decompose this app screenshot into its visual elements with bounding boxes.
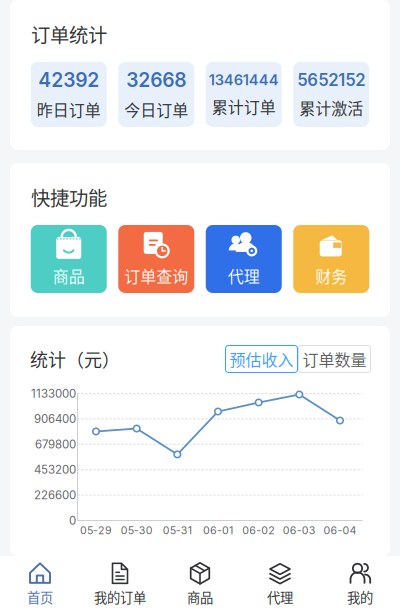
staticText: 代理: [267, 587, 293, 607]
staticText: 453200: [34, 463, 76, 477]
button[interactable]: 订单查询: [118, 225, 194, 293]
staticText: 代理: [228, 264, 260, 287]
staticText: 财务: [315, 264, 347, 287]
staticText: 累计订单: [212, 95, 276, 118]
staticText: 商品: [187, 587, 213, 607]
staticText: 06-02: [242, 524, 275, 537]
button[interactable]: 财务: [293, 225, 369, 293]
button[interactable]: 预估收入: [225, 345, 298, 373]
staticText: 快捷功能: [31, 183, 107, 211]
staticText: 679800: [35, 437, 76, 451]
staticText: 32668: [126, 68, 186, 92]
staticText: 商品: [53, 264, 85, 287]
staticText: 1133000: [31, 387, 76, 400]
button[interactable]: 我的: [320, 556, 400, 611]
staticText: 13461444: [209, 71, 279, 89]
staticText: 226600: [34, 488, 76, 502]
staticText: 06-03: [283, 524, 316, 537]
staticText: 首页: [27, 587, 53, 607]
staticText: 0: [69, 514, 76, 527]
staticText: 预估收入: [229, 347, 293, 371]
button[interactable]: 我的订单: [80, 556, 160, 611]
button[interactable]: 商品: [31, 225, 107, 293]
button[interactable]: 代理: [240, 556, 320, 611]
staticText: 05-30: [121, 524, 153, 537]
staticText: 累计激活: [299, 96, 363, 119]
staticText: 我的: [347, 587, 373, 607]
staticText: 订单统计: [31, 20, 107, 48]
button[interactable]: 首页: [0, 556, 80, 611]
staticText: 42392: [38, 68, 99, 92]
staticText: 06-04: [323, 524, 356, 537]
staticText: 05-31: [163, 524, 192, 537]
staticText: 我的订单: [94, 587, 146, 607]
staticText: 06-01: [203, 524, 233, 537]
staticText: 05-29: [80, 524, 112, 537]
button[interactable]: 商品: [160, 556, 240, 611]
staticText: 订单查询: [124, 264, 188, 287]
staticText: 906400: [34, 412, 76, 426]
staticText: 昨日订单: [37, 98, 101, 121]
staticText: 今日订单: [124, 98, 188, 121]
staticText: 统计（元）: [30, 346, 120, 372]
staticText: 5652152: [297, 70, 365, 90]
staticText: 订单数量: [302, 347, 366, 371]
button[interactable]: 订单数量: [298, 345, 371, 373]
button[interactable]: 代理: [206, 225, 282, 293]
